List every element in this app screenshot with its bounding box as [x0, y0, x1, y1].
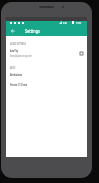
button[interactable]: Version 1.7.3 beta — [6, 80, 87, 89]
button[interactable]: Navigate up — [9, 27, 17, 35]
staticText: ABOUT — [10, 65, 16, 70]
staticText: Start playback on app start — [10, 54, 32, 58]
button[interactable]: Attributions — [6, 70, 87, 79]
staticText: Attributions — [10, 72, 22, 77]
staticText: AUDIO SETTINGS — [10, 41, 26, 46]
staticText: Auto Play — [10, 48, 19, 53]
staticText: 54% — [63, 21, 67, 24]
button[interactable]: Auto Play — [6, 47, 87, 58]
staticText: Settings — [25, 28, 41, 34]
staticText: 17:35 — [76, 21, 81, 24]
staticText: Version 1.7.3 beta — [10, 82, 27, 87]
